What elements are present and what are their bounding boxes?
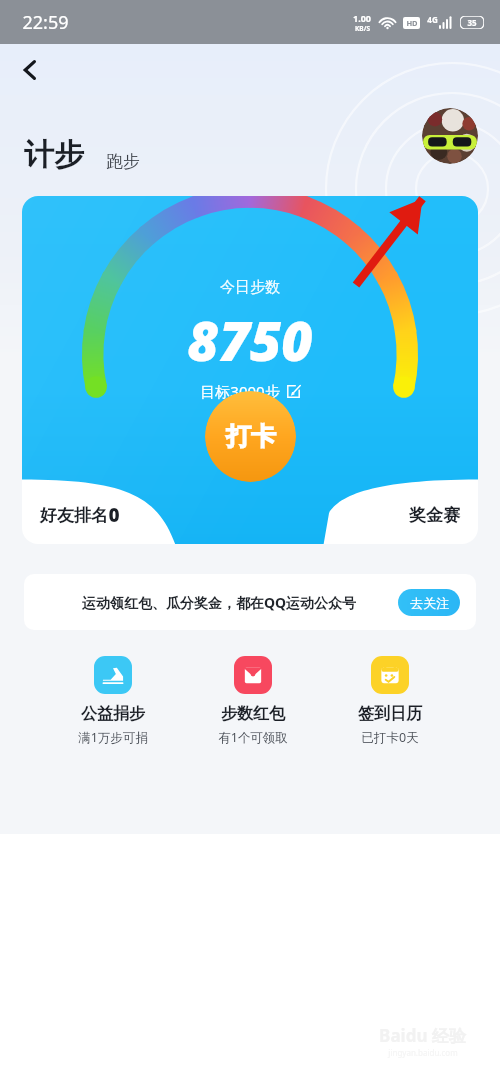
button[interactable]: 奖金赛: [250, 505, 460, 526]
staticText: 目标3000步: [200, 381, 280, 401]
staticText: 0: [108, 502, 120, 528]
staticText: 奖金赛: [409, 505, 460, 526]
button[interactable]: 好友排名: [40, 502, 250, 528]
staticText: HD: [406, 18, 418, 28]
staticText: jingyan.baidu.com: [388, 1047, 458, 1058]
staticText: 有1个可领取: [218, 729, 288, 746]
staticText: Baidu 经验: [379, 1024, 466, 1047]
staticText: 8750: [187, 303, 313, 377]
button[interactable]: 签到日历: [348, 652, 432, 750]
staticText: KB/S: [355, 24, 370, 33]
button[interactable]: Profile avatar: [422, 108, 478, 164]
staticText: 步数红包: [221, 704, 285, 724]
staticText: 今日步数: [220, 278, 280, 297]
staticText: 签到日历: [358, 704, 422, 724]
staticText: 运动领红包、瓜分奖金，都在QQ运动公众号: [40, 593, 398, 612]
staticText: 4G: [427, 14, 438, 25]
button[interactable]: 运动领红包、瓜分奖金，都在QQ运动公众号: [24, 574, 476, 630]
button[interactable]: 目标3000步: [200, 381, 301, 401]
button[interactable]: 计步: [24, 136, 84, 174]
staticText: 好友排名: [40, 505, 108, 526]
staticText: 35: [467, 17, 477, 28]
staticText: 22:59: [22, 10, 69, 35]
button[interactable]: Back: [8, 48, 52, 92]
button[interactable]: 步数红包: [208, 652, 298, 750]
staticText: 去关注: [410, 595, 449, 611]
button[interactable]: 去关注: [398, 589, 460, 616]
staticText: 计步: [24, 136, 84, 174]
staticText: 已打卡0天: [361, 729, 419, 746]
button[interactable]: 打卡: [205, 391, 296, 482]
button[interactable]: 公益捐步: [68, 652, 158, 750]
staticText: 1.00: [353, 12, 371, 24]
staticText: 满1万步可捐: [78, 729, 148, 746]
staticText: 公益捐步: [81, 704, 145, 724]
button[interactable]: 跑步: [106, 153, 140, 174]
staticText: 打卡: [226, 421, 276, 452]
staticText: 跑步: [106, 151, 140, 172]
